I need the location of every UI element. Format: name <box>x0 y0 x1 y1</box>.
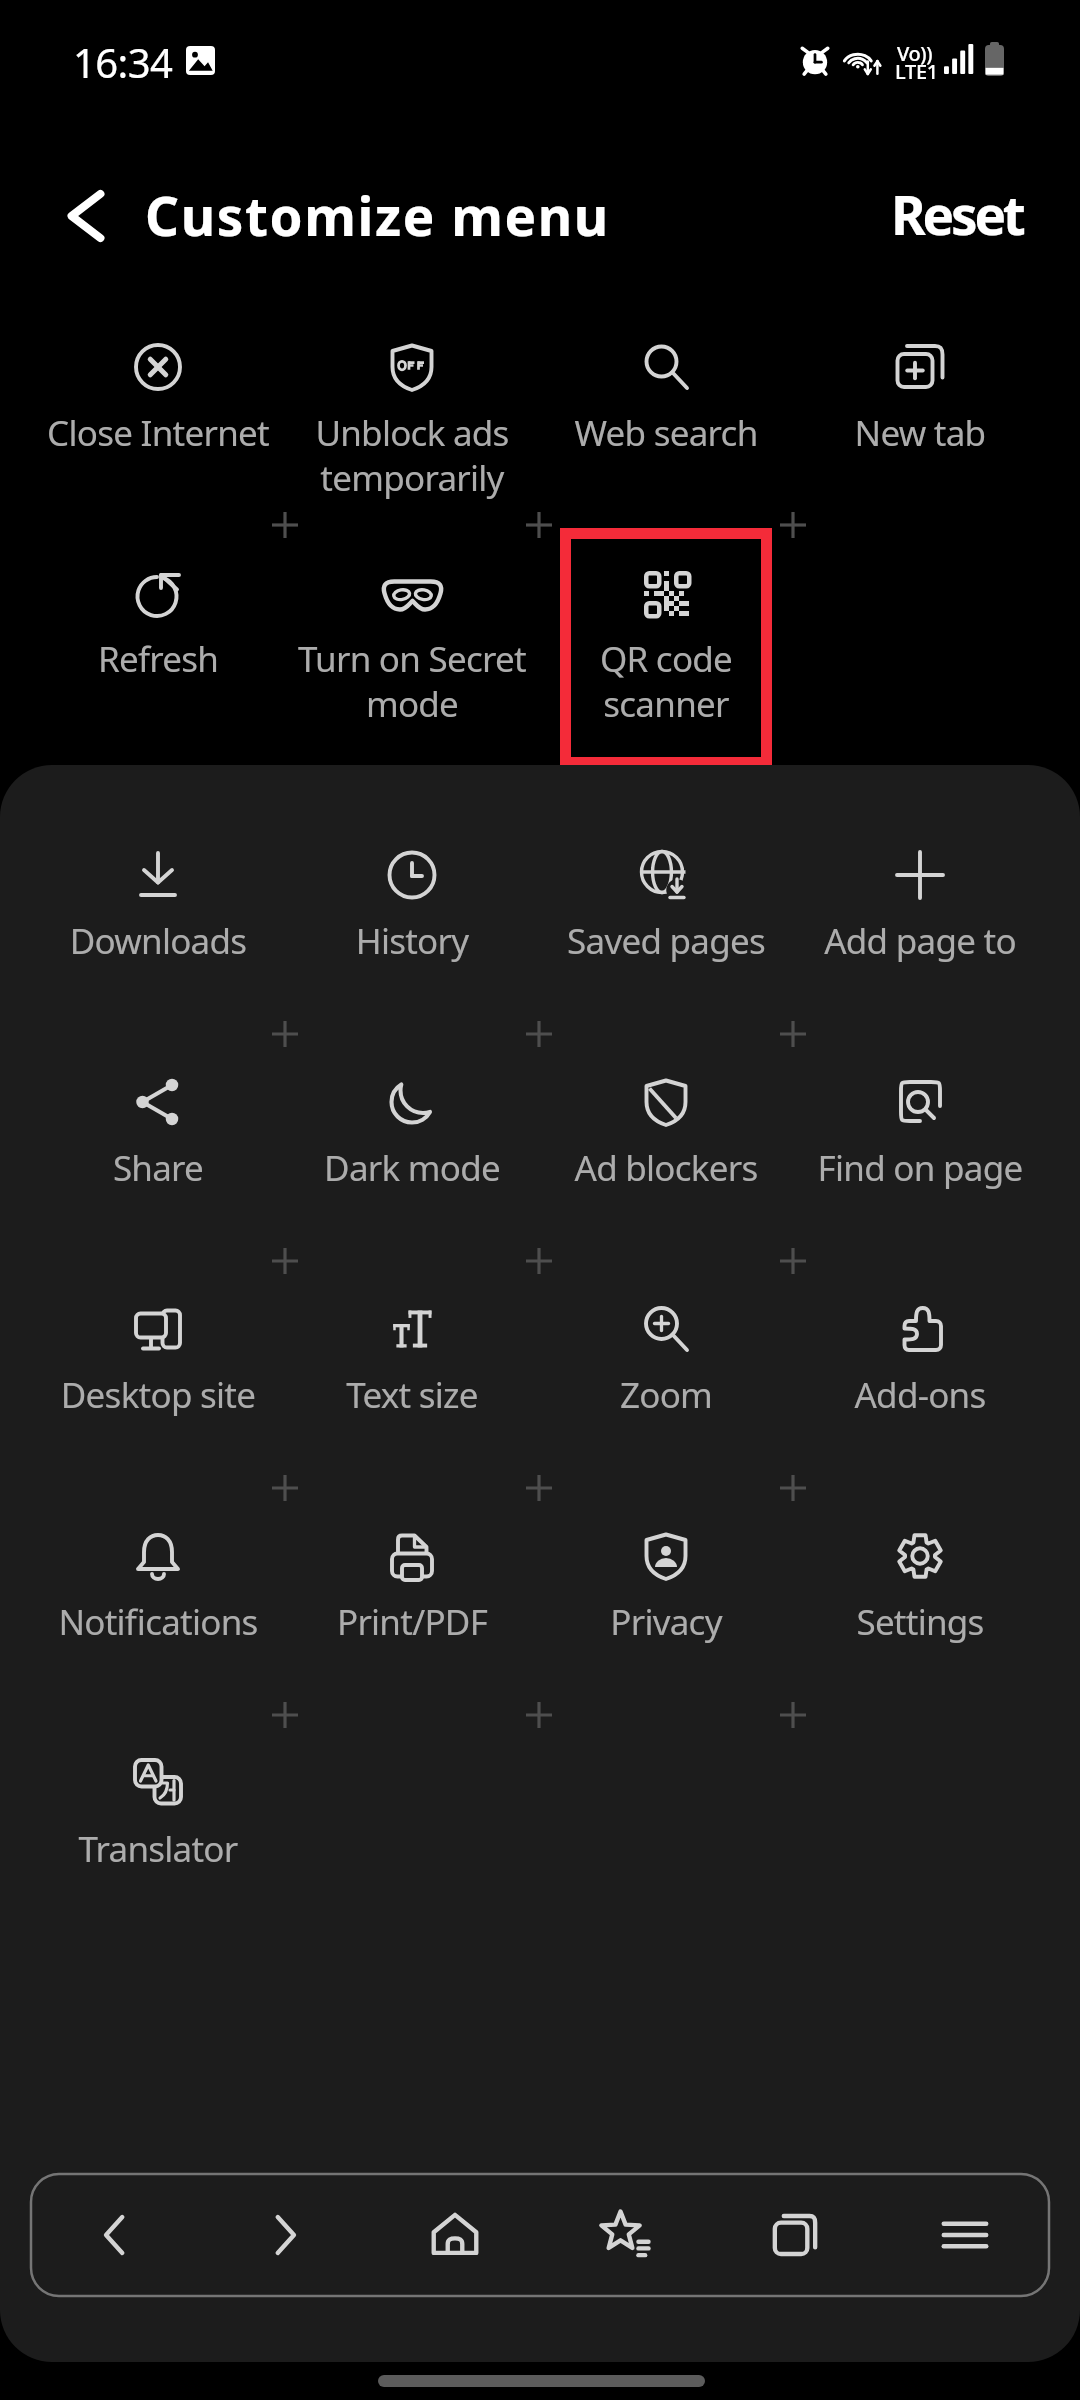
button[interactable]: Back <box>44 174 128 258</box>
staticText: Add-ons <box>793 1371 1047 1419</box>
staticText: Notifications <box>31 1598 285 1646</box>
button[interactable]: Add item here <box>767 499 819 551</box>
staticText: Translator <box>31 1825 285 1873</box>
button[interactable]: Add item here <box>767 1689 819 1741</box>
button[interactable]: Add item here <box>259 1008 311 1060</box>
button[interactable]: Web search <box>539 325 793 457</box>
staticText: New tab <box>793 409 1047 457</box>
staticText: Customize menu <box>145 179 610 251</box>
button[interactable]: Refresh <box>31 551 285 683</box>
button[interactable]: History <box>285 833 539 965</box>
staticText: Text size <box>285 1371 539 1419</box>
button[interactable]: Add-ons <box>793 1287 1047 1419</box>
button[interactable]: New tab <box>793 325 1047 457</box>
button[interactable]: Add item here <box>259 1235 311 1287</box>
button[interactable]: Settings <box>793 1514 1047 1646</box>
button[interactable]: Find on page <box>793 1060 1047 1192</box>
button[interactable]: Bookmarks <box>540 2173 710 2297</box>
staticText: LTE1 <box>895 58 938 85</box>
button[interactable]: Add item here <box>513 499 565 551</box>
button[interactable]: Add item here <box>259 499 311 551</box>
staticText: Close Internet <box>31 409 285 457</box>
staticText: History <box>285 917 539 965</box>
staticText: Web search <box>539 409 793 457</box>
button[interactable]: Ad blockers <box>539 1060 793 1192</box>
button[interactable]: Add item here <box>767 1235 819 1287</box>
button[interactable]: Print/PDF <box>285 1514 539 1646</box>
button[interactable]: Desktop site <box>31 1287 285 1419</box>
button[interactable]: Forward <box>200 2173 370 2297</box>
button[interactable]: Privacy <box>539 1514 793 1646</box>
button[interactable]: Zoom <box>539 1287 793 1419</box>
staticText: Zoom <box>539 1371 793 1419</box>
staticText: Refresh <box>31 635 285 683</box>
button[interactable]: Add item here <box>513 1008 565 1060</box>
staticText: Privacy <box>539 1598 793 1646</box>
button[interactable]: Downloads <box>31 833 285 965</box>
staticText: Downloads <box>31 917 285 965</box>
button[interactable]: Home <box>370 2173 540 2297</box>
button[interactable]: Notifications <box>31 1514 285 1646</box>
staticText: Ad blockers <box>539 1144 793 1192</box>
button[interactable]: Add page to <box>793 833 1047 965</box>
button[interactable]: Add item here <box>259 1462 311 1514</box>
staticText: Reset <box>891 178 1023 250</box>
staticText: QR code scanner <box>539 635 793 727</box>
button[interactable]: Reset <box>891 178 1023 250</box>
staticText: 16:34 <box>73 35 173 89</box>
staticText: Print/PDF <box>285 1598 539 1646</box>
staticText: Dark mode <box>285 1144 539 1192</box>
button[interactable]: Turn on Secret mode <box>285 551 539 683</box>
button[interactable]: Text size <box>285 1287 539 1419</box>
button[interactable]: Menu <box>880 2173 1050 2297</box>
staticText: Desktop site <box>31 1371 285 1419</box>
button[interactable]: Dark mode <box>285 1060 539 1192</box>
button[interactable]: Translator <box>31 1741 285 1873</box>
staticText: Find on page <box>793 1144 1047 1192</box>
staticText: Settings <box>793 1598 1047 1646</box>
button[interactable]: Add item here <box>513 1235 565 1287</box>
button[interactable]: Add item here <box>259 1689 311 1741</box>
staticText: Vo)) <box>897 40 932 67</box>
staticText: Share <box>31 1144 285 1192</box>
button[interactable]: Add item here <box>513 1689 565 1741</box>
button[interactable]: Add item here <box>513 1462 565 1514</box>
staticText: Unblock ads temporarily <box>285 409 539 501</box>
button[interactable]: Add item here <box>767 1462 819 1514</box>
button[interactable]: QR code scanner <box>539 551 793 683</box>
button[interactable]: Back <box>30 2173 200 2297</box>
staticText: Add page to <box>793 917 1047 965</box>
staticText: Saved pages <box>539 917 793 965</box>
button[interactable]: Unblock ads temporarily <box>285 325 539 457</box>
button[interactable]: Share <box>31 1060 285 1192</box>
button[interactable]: Add item here <box>767 1008 819 1060</box>
button[interactable]: Close Internet <box>31 325 285 457</box>
staticText: Turn on Secret mode <box>285 635 539 727</box>
button[interactable]: Tabs <box>710 2173 880 2297</box>
button[interactable]: Saved pages <box>539 833 793 965</box>
